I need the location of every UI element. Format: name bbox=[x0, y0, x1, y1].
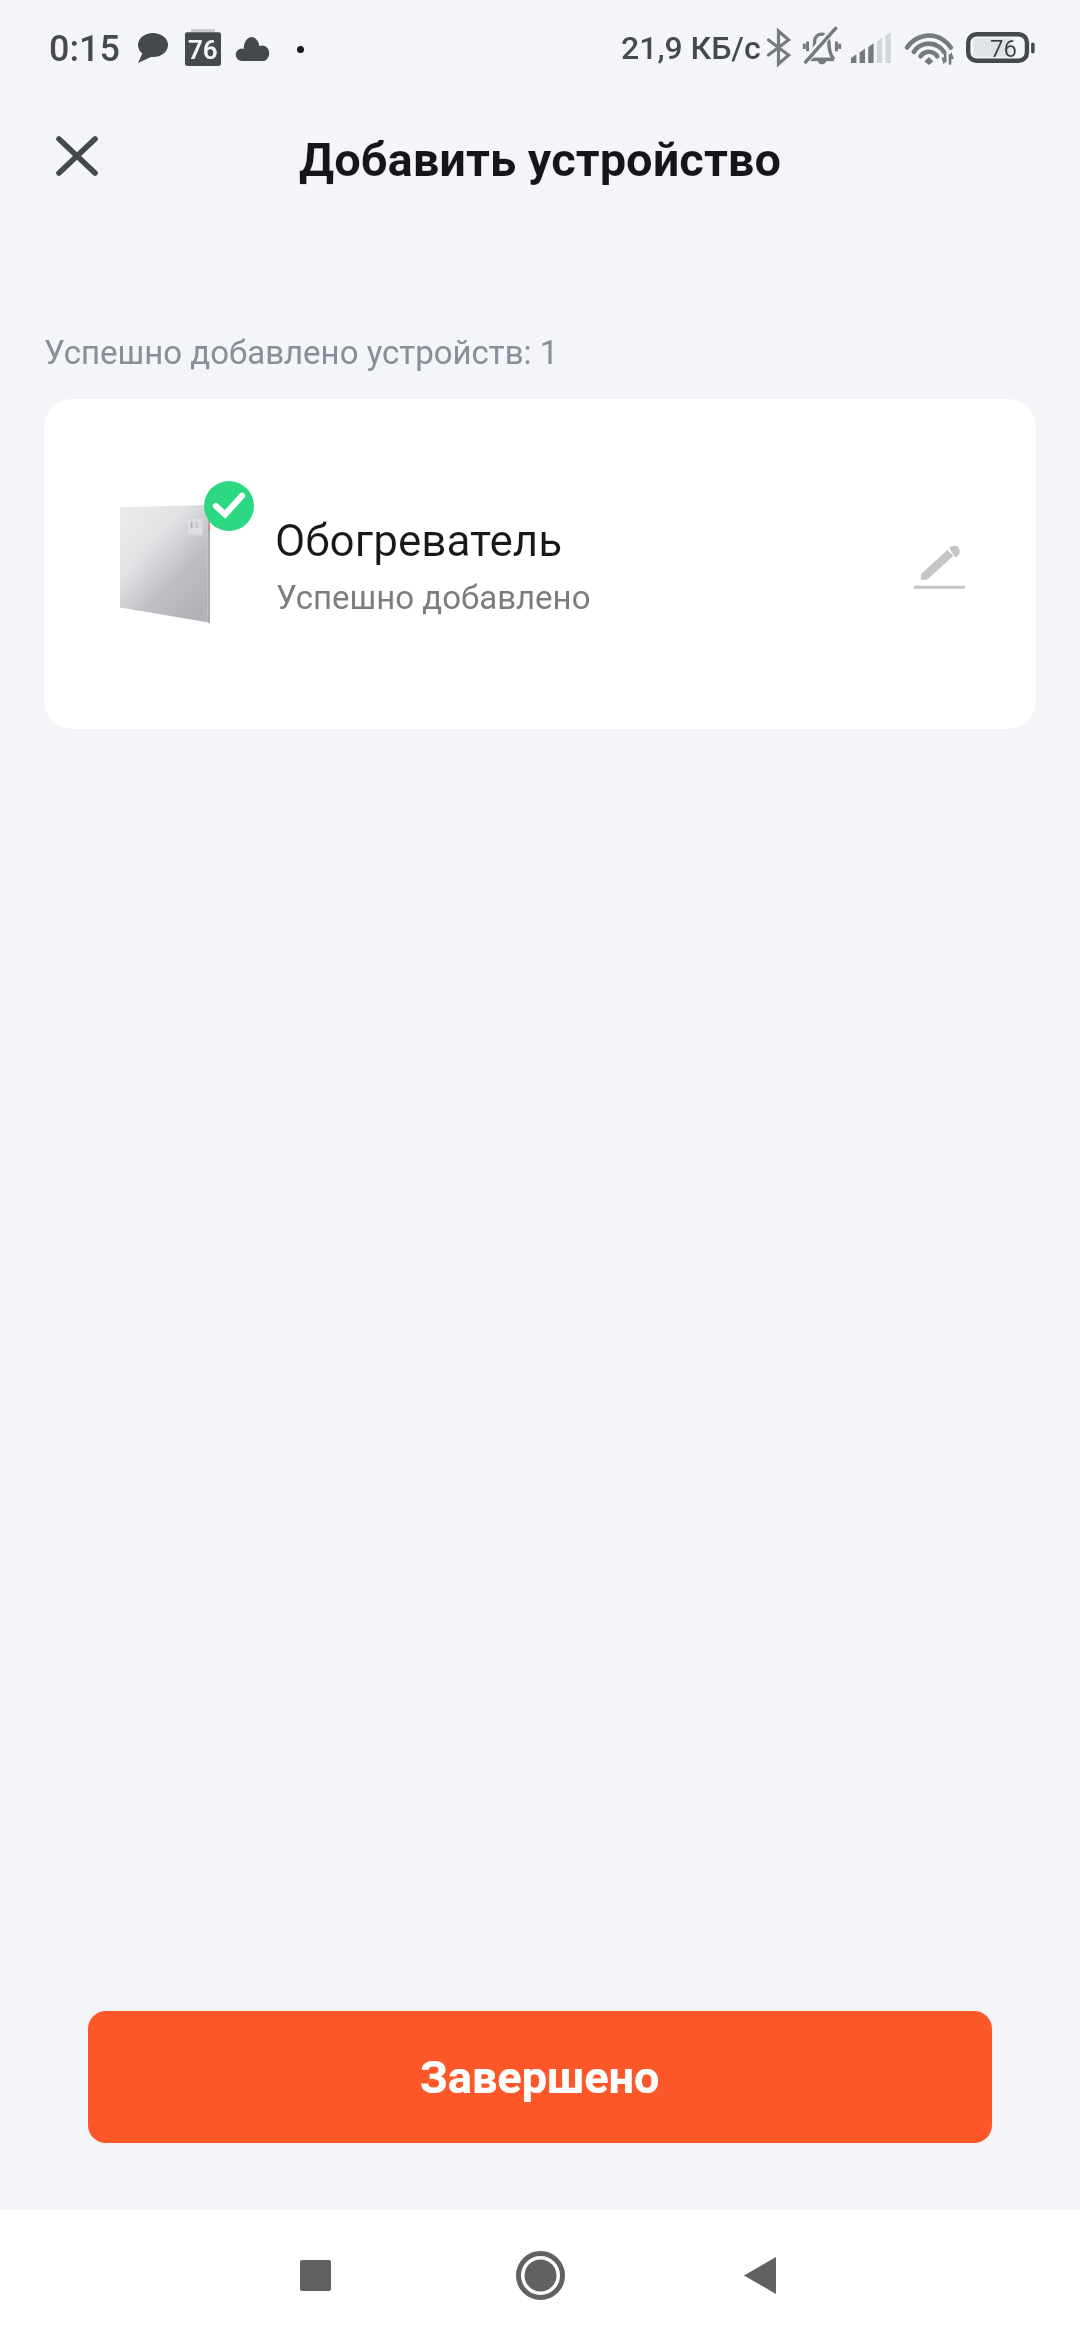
button[interactable]: Недавние bbox=[245, 2210, 385, 2340]
button[interactable]: Обогреватель bbox=[44, 399, 1036, 729]
staticText: Успешно добавлено устройств: 1 bbox=[44, 333, 559, 372]
button[interactable]: Завершено bbox=[88, 2011, 992, 2143]
staticText: 76 bbox=[188, 35, 218, 65]
button[interactable]: Переименовать bbox=[889, 516, 989, 616]
staticText: Обогреватель bbox=[275, 515, 563, 567]
button[interactable]: Закрыть bbox=[27, 106, 127, 206]
staticText: 21,9 КБ/с bbox=[621, 29, 761, 67]
button[interactable]: Главный экран bbox=[470, 2210, 610, 2340]
button[interactable]: Назад bbox=[690, 2210, 830, 2340]
staticText: 0:15 bbox=[49, 28, 120, 70]
staticText: Завершено bbox=[420, 2051, 660, 2104]
staticText: Успешно добавлено bbox=[276, 578, 591, 617]
staticText: Добавить устройство bbox=[299, 132, 782, 187]
staticText: 76 bbox=[990, 35, 1017, 63]
